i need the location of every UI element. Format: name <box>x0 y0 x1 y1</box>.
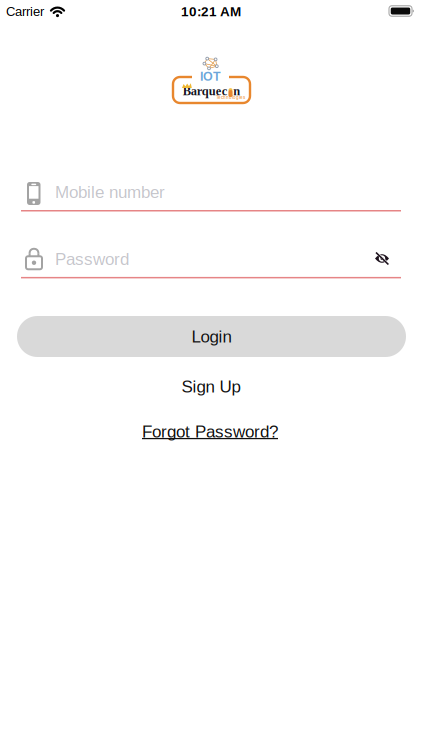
staticText: Sign Up <box>181 377 240 396</box>
staticText: 10:21 AM <box>181 4 241 19</box>
staticText: n <box>233 84 240 98</box>
staticText: Password <box>55 249 129 268</box>
staticText: Carrier <box>6 4 44 19</box>
staticText: Login <box>191 327 231 346</box>
button[interactable]: Sign Up <box>173 373 248 400</box>
button[interactable]: Show password <box>367 245 397 271</box>
button[interactable]: Login <box>17 316 406 357</box>
staticText: IOT <box>200 69 221 83</box>
staticText: Barquec <box>183 84 228 98</box>
button[interactable]: Mobile number <box>21 170 401 212</box>
staticText: Forgot Password? <box>142 422 278 441</box>
button[interactable]: Password <box>21 237 401 279</box>
staticText: Technologies <box>216 95 245 100</box>
staticText: Mobile number <box>55 182 165 201</box>
button[interactable]: Forgot Password? <box>134 418 286 445</box>
